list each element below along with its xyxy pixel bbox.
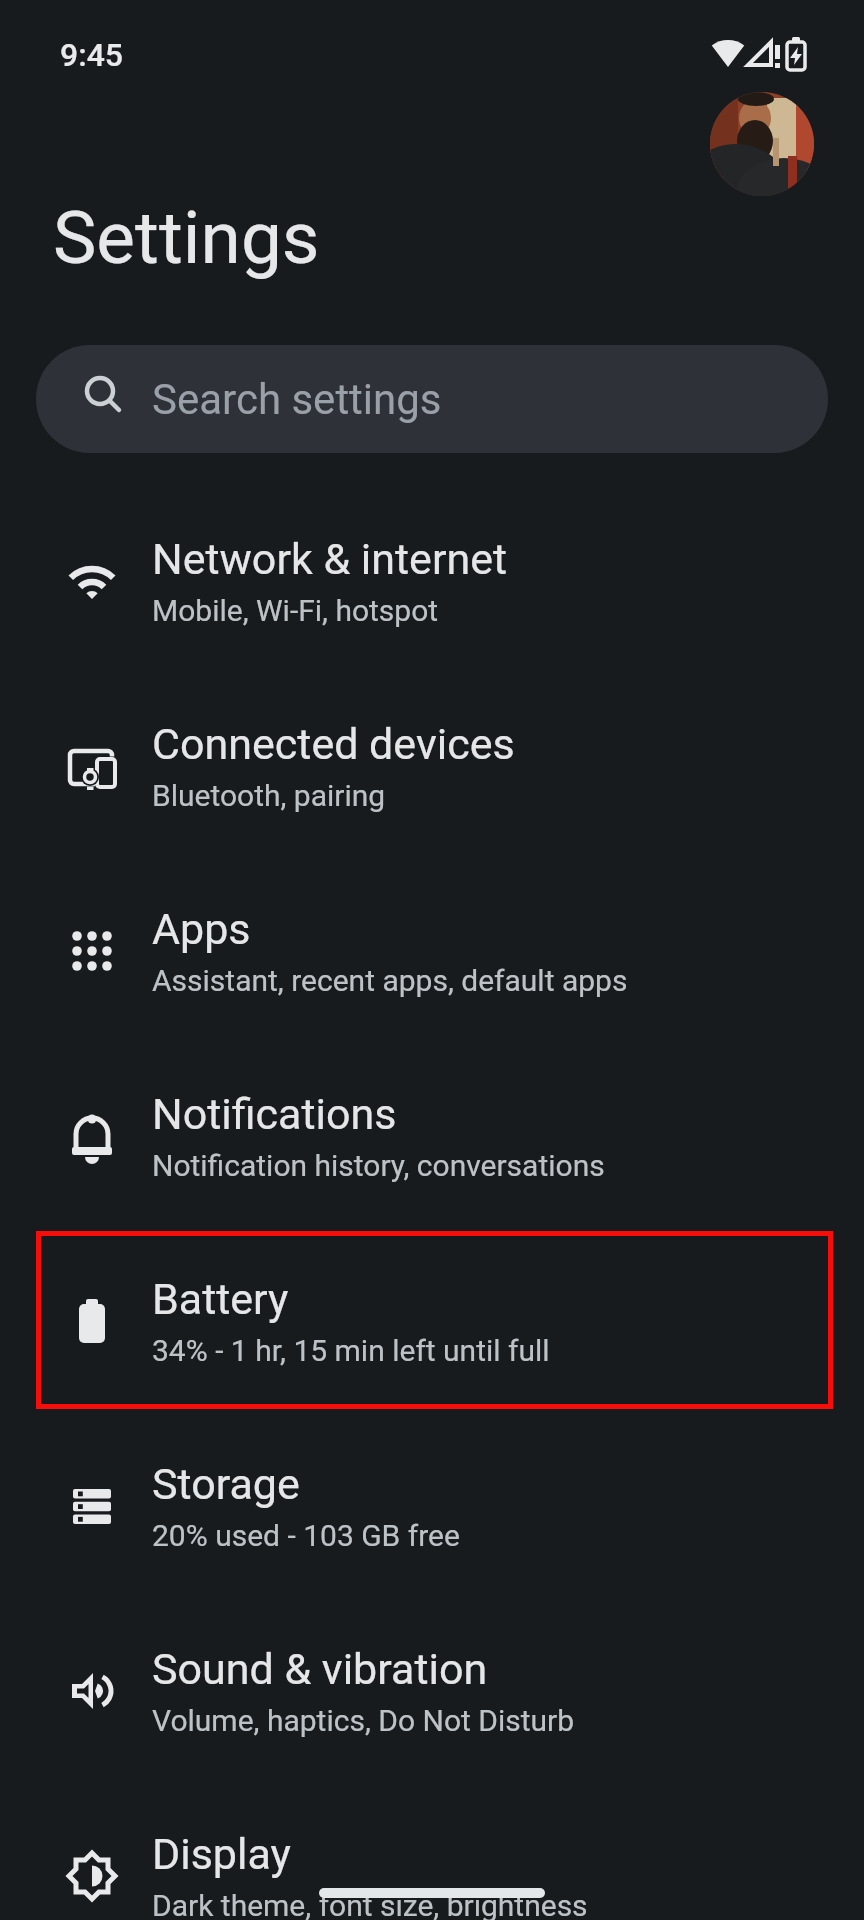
button[interactable]: Battery [0,1228,864,1413]
staticText: Display [152,1829,291,1879]
staticText: Volume, haptics, Do Not Disturb [152,1703,575,1738]
staticText: 20% used - 103 GB free [152,1518,460,1553]
staticText: Battery [152,1274,289,1324]
staticText: Settings [53,195,320,281]
button[interactable]: Notifications [0,1043,864,1228]
staticText: 9:45 [60,36,124,74]
staticText: Apps [152,904,251,954]
button[interactable]: Search settings [36,345,828,453]
staticText: Mobile, Wi-Fi, hotspot [152,593,439,628]
staticText: Bluetooth, pairing [152,778,386,813]
button[interactable]: Display [0,1783,864,1920]
staticText: Search settings [152,375,442,424]
button[interactable]: Storage [0,1413,864,1598]
button[interactable]: Connected devices [0,673,864,858]
staticText: Connected devices [152,719,515,769]
staticText: Assistant, recent apps, default apps [152,963,628,998]
staticText: Storage [152,1459,300,1509]
staticText: Notifications [152,1089,397,1139]
staticText: 34% - 1 hr, 15 min left until full [152,1333,550,1368]
staticText: Dark theme, font size, brightness [152,1888,588,1920]
staticText: Network & internet [152,534,508,584]
button[interactable]: Sound & vibration [0,1598,864,1783]
button[interactable]: Apps [0,858,864,1043]
staticText: Notification history, conversations [152,1148,605,1183]
staticText: Sound & vibration [152,1644,488,1694]
button[interactable] [710,92,814,196]
button[interactable]: Network & internet [0,488,864,673]
